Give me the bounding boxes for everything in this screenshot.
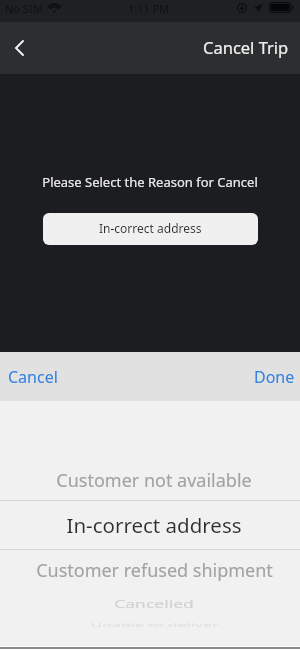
staticText: Cancel Trip bbox=[203, 36, 289, 58]
staticText: Done bbox=[254, 366, 295, 388]
button[interactable]: Back bbox=[0, 29, 38, 67]
staticText: Customer refused shipment bbox=[36, 558, 273, 583]
button[interactable]: Done bbox=[243, 354, 300, 400]
staticText: Cancelled bbox=[114, 597, 194, 611]
staticText: Customer not available bbox=[56, 468, 252, 493]
staticText: Please Select the Reason for Cancel bbox=[0, 173, 300, 191]
button[interactable]: Customer refused shipment bbox=[4, 555, 300, 585]
button[interactable]: Customer not available bbox=[4, 465, 300, 495]
staticText: In-correct address bbox=[66, 511, 242, 539]
staticText: Unable to deliver bbox=[90, 621, 219, 629]
staticText: In-correct address bbox=[99, 220, 202, 236]
staticText: 1:11 PM bbox=[128, 1, 170, 16]
button[interactable]: In-correct address bbox=[43, 213, 258, 245]
button[interactable]: Cancelled bbox=[4, 589, 300, 619]
button[interactable]: In-correct address bbox=[4, 510, 300, 540]
staticText: Cancel bbox=[8, 366, 58, 388]
button[interactable]: Cancel bbox=[0, 354, 69, 400]
staticText: No SIM bbox=[5, 1, 43, 16]
